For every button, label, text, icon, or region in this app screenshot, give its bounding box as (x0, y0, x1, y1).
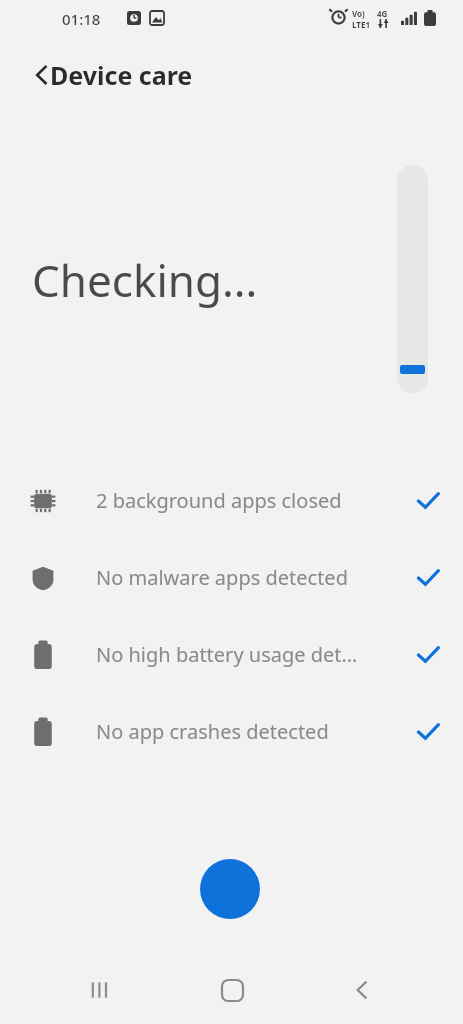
staticText: No malware apps detected (96, 564, 409, 591)
button[interactable]: No app crashes detected (0, 693, 463, 770)
staticText: No high battery usage det… (96, 641, 409, 668)
staticText: LTE1 (352, 19, 370, 30)
staticText: Vo) (352, 8, 365, 19)
button[interactable]: Recent apps (71, 960, 131, 1020)
staticText: No app crashes detected (96, 718, 409, 745)
button[interactable]: Back (332, 960, 392, 1020)
button[interactable]: Optimise now (200, 859, 260, 919)
button[interactable]: No malware apps detected (0, 539, 463, 616)
button[interactable]: No high battery usage det… (0, 616, 463, 693)
staticText: 4G (377, 8, 388, 19)
button[interactable]: Back (22, 55, 62, 95)
staticText: 2 background apps closed (96, 487, 409, 514)
staticText: Checking... (32, 250, 258, 310)
button[interactable]: 2 background apps closed (0, 462, 463, 539)
button[interactable]: Home (202, 960, 262, 1020)
staticText: 01:18 (62, 9, 101, 29)
staticText: Device care (50, 58, 193, 92)
